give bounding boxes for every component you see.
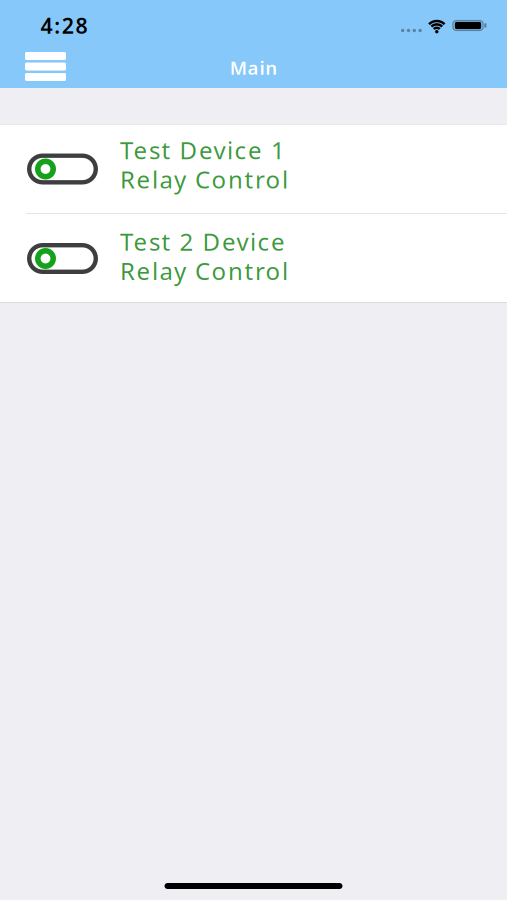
staticText: Test Device 1 bbox=[120, 134, 285, 166]
staticText: Main bbox=[230, 55, 277, 80]
button[interactable]: Test Device 1 relay switch bbox=[27, 153, 98, 184]
button[interactable]: Test 2 Device relay switch bbox=[27, 243, 98, 274]
button[interactable]: Menu bbox=[0, 44, 66, 88]
staticText: 4:28 bbox=[41, 11, 87, 40]
staticText: Relay Control bbox=[120, 255, 288, 287]
staticText: Test 2 Device bbox=[120, 225, 285, 257]
button[interactable]: Test Device 1 bbox=[0, 125, 507, 213]
staticText: Relay Control bbox=[120, 163, 288, 195]
button[interactable]: Test 2 Device bbox=[0, 214, 507, 302]
